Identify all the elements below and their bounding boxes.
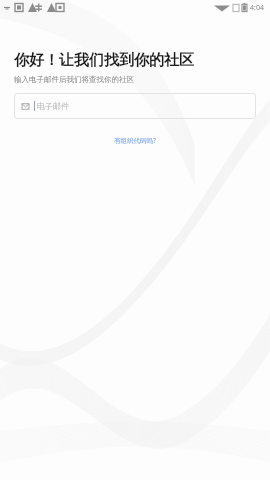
button[interactable]: 电子邮件 <box>14 93 256 119</box>
staticText: 有组织代码吗? <box>114 136 156 145</box>
staticText: 4:04 <box>250 3 264 13</box>
staticText: 电子邮件 <box>37 101 69 111</box>
staticText: 你好！让我们找到你的社区 <box>14 51 194 70</box>
button[interactable]: 有组织代码吗? <box>106 133 164 148</box>
staticText: 输入电子邮件后我们将查找你的社区 <box>14 75 134 84</box>
